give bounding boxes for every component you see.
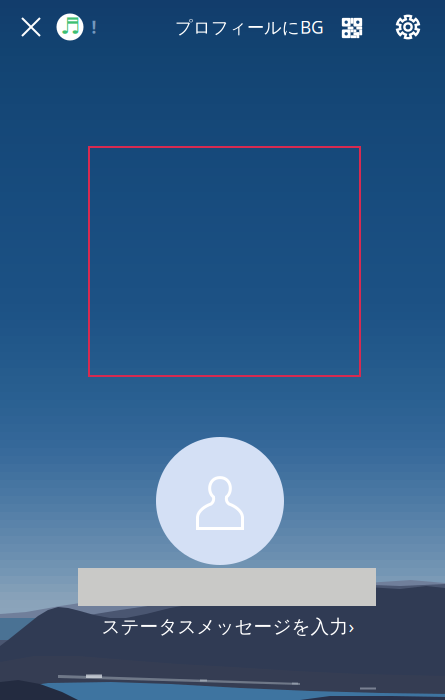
staticText: プロフィールにBGM	[175, 15, 340, 38]
staticText: ♬	[60, 13, 80, 39]
button[interactable]: QR code	[330, 6, 374, 50]
button[interactable]: Profile photo	[156, 437, 284, 565]
button[interactable]: ステータスメッセージを入力›	[96, 614, 360, 638]
button[interactable]: Settings	[386, 5, 430, 49]
staticText: ステータスメッセージを入力›	[101, 614, 354, 638]
button[interactable]: Close	[9, 5, 53, 49]
button[interactable]: Profile BGM	[53, 5, 87, 49]
staticText: !	[91, 15, 96, 38]
